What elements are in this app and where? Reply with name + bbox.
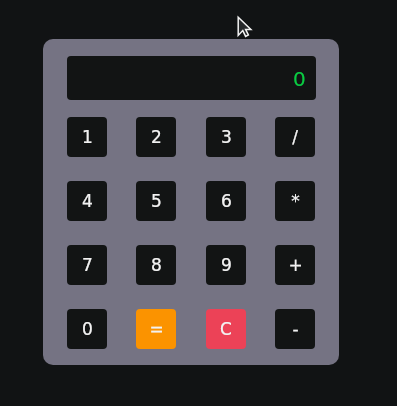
button[interactable]: 1	[67, 117, 107, 157]
button[interactable]: C	[206, 309, 246, 349]
staticText: 2	[151, 127, 162, 147]
button[interactable]: Display	[67, 56, 316, 100]
button[interactable]: 0	[67, 309, 107, 349]
staticText: 0	[293, 67, 306, 90]
staticText: 6	[221, 191, 232, 211]
staticText: 5	[151, 191, 162, 211]
button[interactable]: =	[136, 309, 176, 349]
staticText: 0	[82, 319, 93, 339]
staticText: +	[288, 255, 303, 275]
button[interactable]: 9	[206, 245, 246, 285]
button[interactable]: /	[275, 117, 315, 157]
button[interactable]: 5	[136, 181, 176, 221]
staticText: 9	[221, 255, 232, 275]
other: Pointer	[0, 0, 397, 406]
button[interactable]: *	[275, 181, 315, 221]
staticText: 1	[82, 127, 93, 147]
staticText: -	[292, 319, 299, 339]
button[interactable]: 6	[206, 181, 246, 221]
staticText: 7	[82, 255, 93, 275]
button[interactable]: 4	[67, 181, 107, 221]
staticText: /	[292, 127, 298, 147]
staticText: 3	[221, 127, 232, 147]
button[interactable]: 8	[136, 245, 176, 285]
staticText: 4	[82, 191, 93, 211]
button[interactable]: 7	[67, 245, 107, 285]
button[interactable]: 2	[136, 117, 176, 157]
button[interactable]: 3	[206, 117, 246, 157]
button[interactable]: -	[275, 309, 315, 349]
staticText: C	[220, 319, 232, 339]
staticText: *	[291, 191, 300, 211]
staticText: 8	[151, 255, 162, 275]
button[interactable]: +	[275, 245, 315, 285]
staticText: =	[149, 319, 164, 339]
